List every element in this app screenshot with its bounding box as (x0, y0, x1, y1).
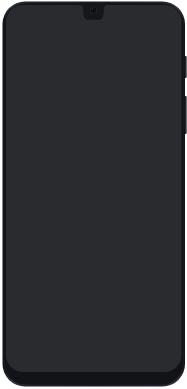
other: Phone device preview, display off (0, 0, 187, 389)
